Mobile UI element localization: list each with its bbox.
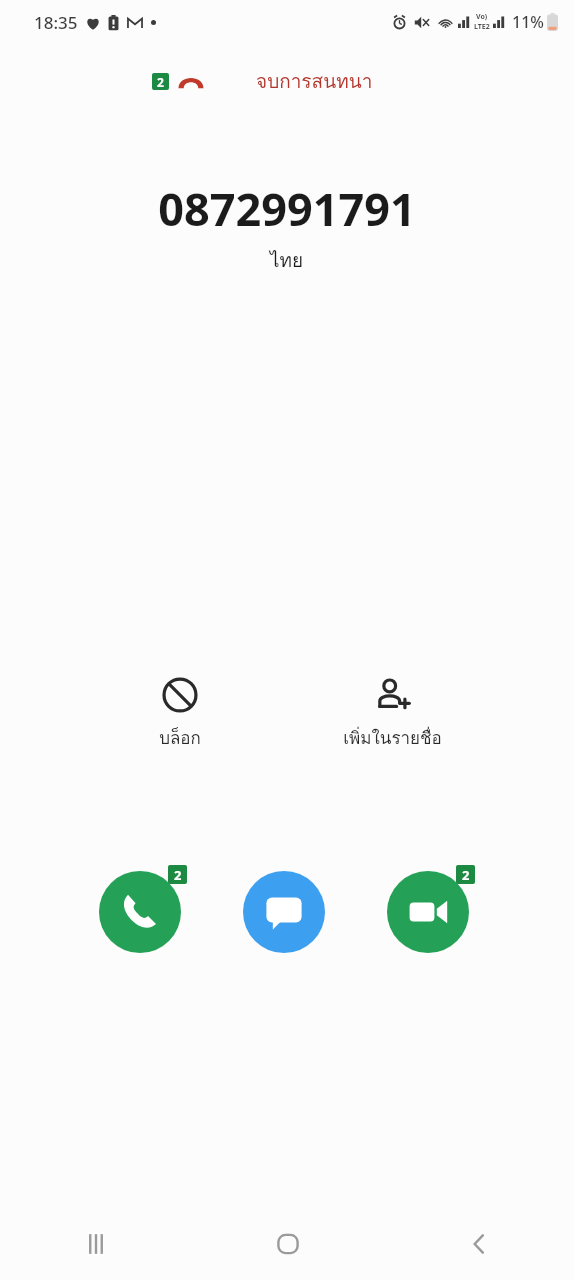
staticText: เพิ่มในรายชื่อ <box>343 724 442 751</box>
button[interactable]: Call <box>99 865 187 953</box>
staticText: จบการสนทนา <box>256 66 373 96</box>
staticText: 2 <box>174 866 182 884</box>
button[interactable]: Back <box>383 1208 574 1280</box>
staticText: Vo) <box>476 12 488 22</box>
staticText: LTE2 <box>474 22 490 32</box>
button[interactable]: Message <box>243 865 331 953</box>
staticText: 2 <box>462 866 470 884</box>
staticText: 2 <box>157 74 164 90</box>
staticText: 0872991791 <box>158 178 416 239</box>
staticText: ไทย <box>270 245 304 275</box>
button[interactable]: Block <box>118 672 242 755</box>
button[interactable]: Add to contacts <box>330 672 454 755</box>
staticText: 18:35 <box>34 11 78 34</box>
button[interactable]: Home <box>192 1208 383 1280</box>
button[interactable]: Video call <box>387 865 475 953</box>
button[interactable]: Recents <box>0 1208 192 1280</box>
staticText: 11% <box>512 11 544 33</box>
staticText: บล็อก <box>159 724 201 751</box>
